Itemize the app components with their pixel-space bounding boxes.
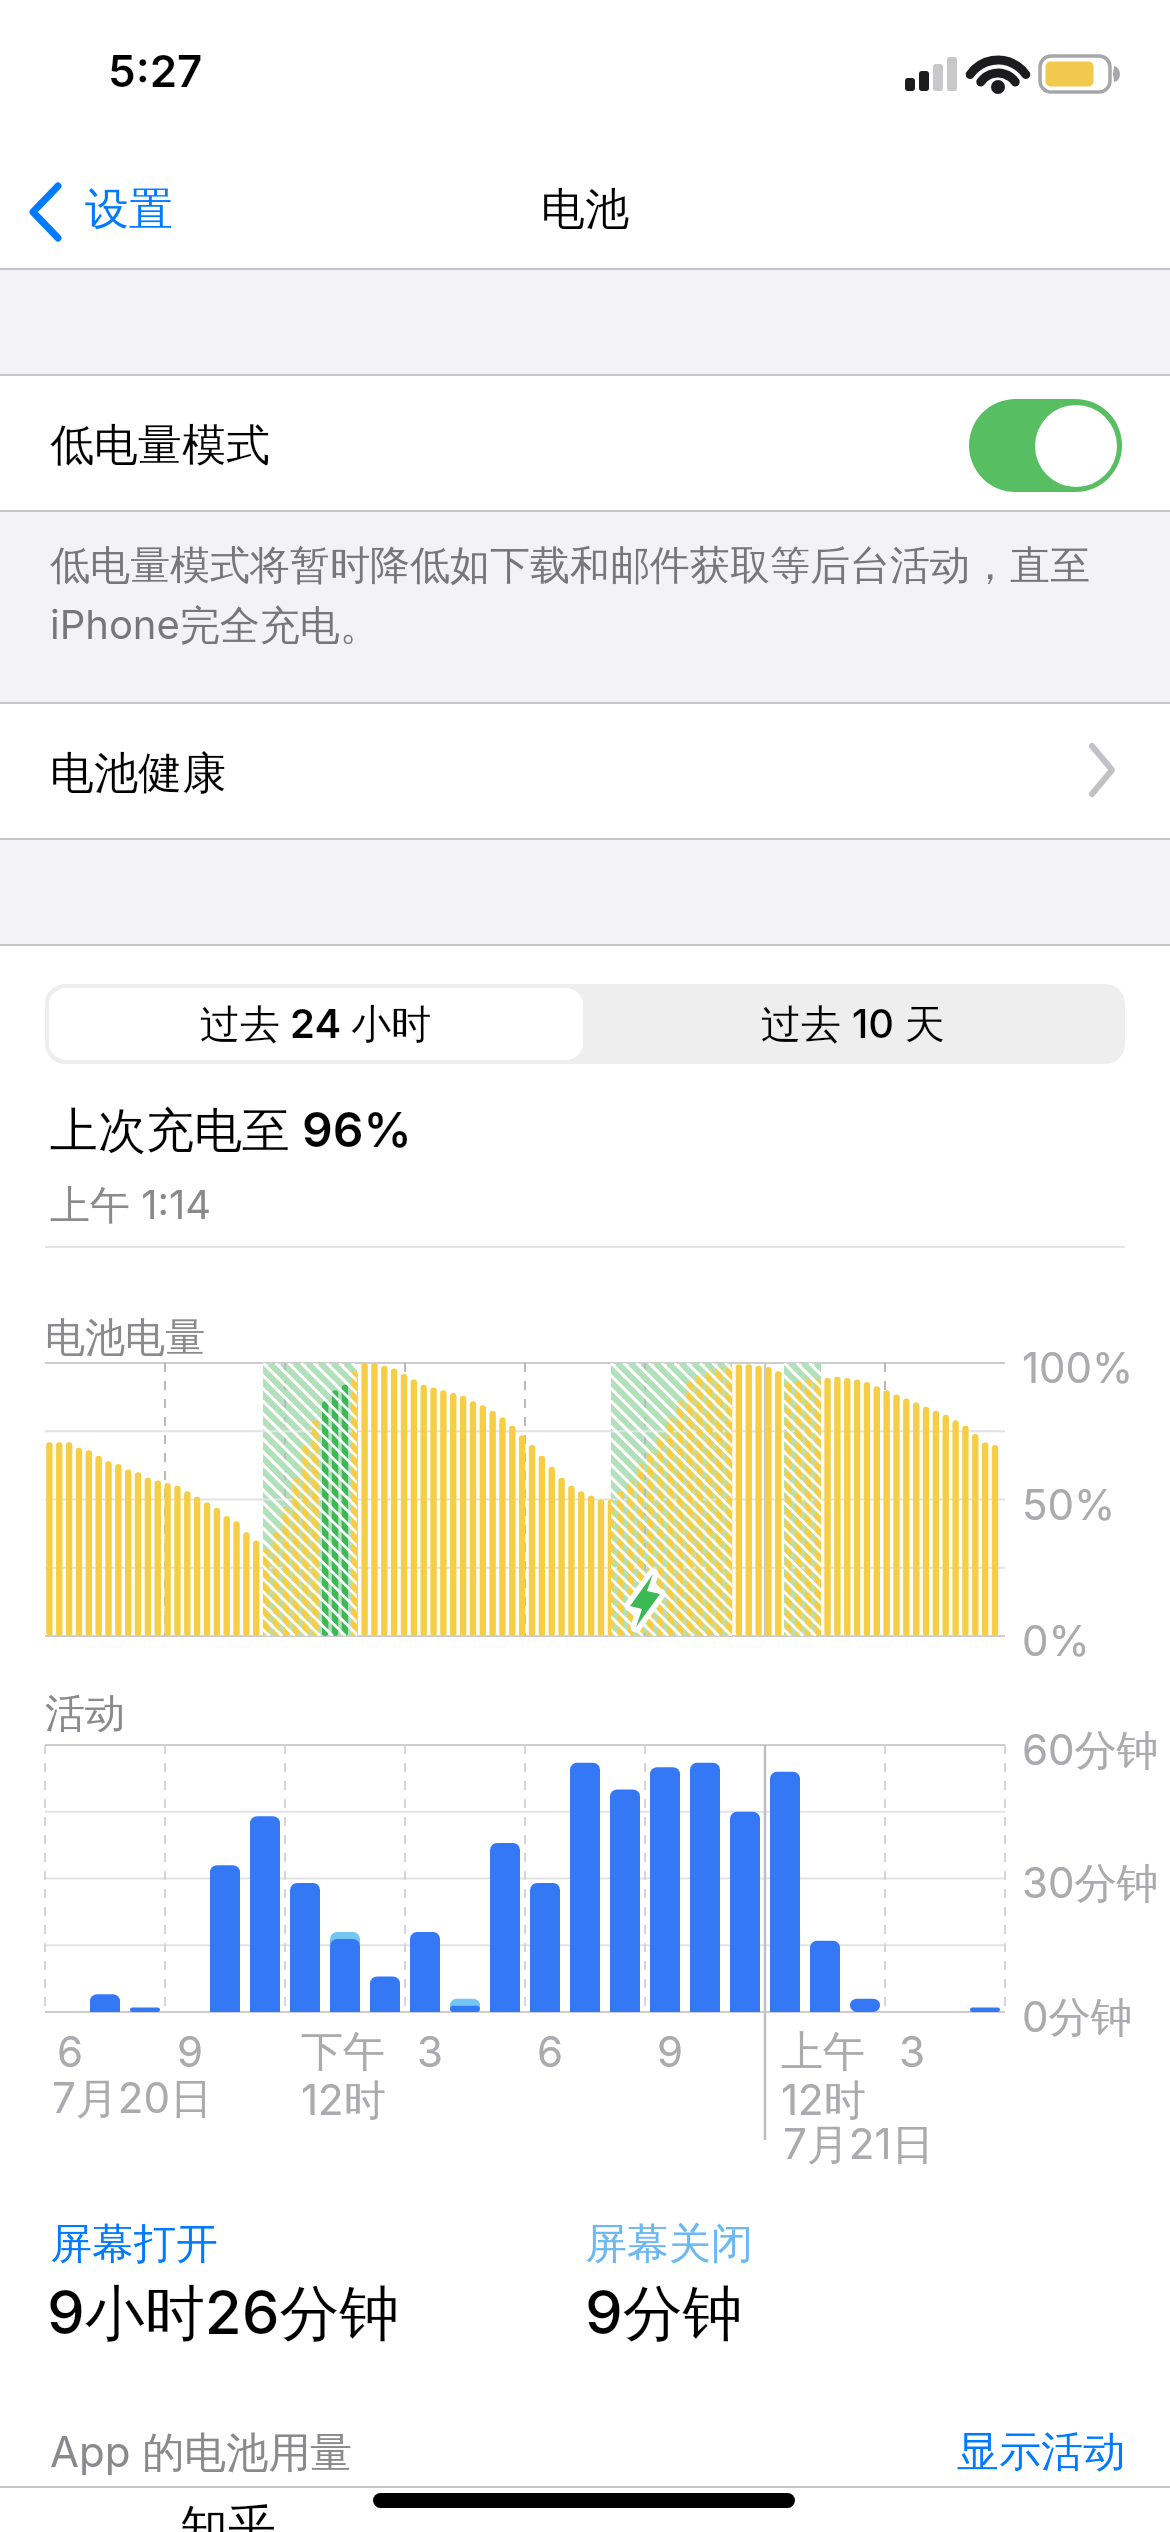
staticText: 下午	[301, 2026, 385, 2079]
button[interactable]: 低电量模式	[0, 376, 1170, 510]
staticText: 电池	[0, 182, 1170, 237]
staticText: 设置	[85, 182, 173, 237]
staticText: 0%	[1022, 1615, 1090, 1666]
button[interactable]: 过去 10 天	[585, 988, 1121, 1060]
staticText: 上午 1:14	[50, 1180, 212, 1231]
staticText: 过去 24 小时	[200, 999, 432, 1050]
staticText: 9	[177, 2026, 204, 2077]
staticText: 9	[657, 2026, 684, 2077]
staticText: 屏幕关闭	[585, 2218, 753, 2271]
staticText: 9小时26分钟	[47, 2276, 400, 2352]
button[interactable]: 设置	[20, 180, 200, 244]
staticText: 30分钟	[1022, 1857, 1159, 1910]
staticText: 知乎	[180, 2498, 276, 2532]
staticText: 0分钟	[1022, 1991, 1133, 2044]
staticText: 6	[537, 2026, 564, 2077]
button[interactable]	[969, 399, 1122, 492]
staticText: 60分钟	[1022, 1724, 1159, 1777]
staticText: 上午	[781, 2026, 865, 2079]
staticText: 活动	[45, 1688, 125, 1738]
staticText: 3	[417, 2026, 443, 2077]
button[interactable]: 过去 24 小时	[49, 988, 583, 1060]
staticText: 电池健康	[50, 746, 226, 801]
staticText: 6	[57, 2026, 84, 2077]
staticText: 低电量模式	[50, 418, 270, 473]
staticText: App 的电池用量	[50, 2426, 353, 2479]
staticText: 3	[899, 2026, 925, 2077]
button[interactable]: 显示活动	[905, 2420, 1125, 2476]
staticText: 低电量模式将暂时降低如下载和邮件获取等后台活动，直至 iPhone完全充电。	[50, 540, 1090, 651]
staticText: 5:27	[108, 44, 203, 97]
button[interactable]: 知乎	[0, 2488, 1170, 2532]
staticText: 7月21日	[783, 2118, 934, 2171]
staticText: 上次充电至 96%	[50, 1100, 412, 1161]
staticText: 屏幕打开	[50, 2218, 218, 2271]
staticText: 100%	[1022, 1342, 1134, 1393]
button[interactable]: 电池健康	[0, 704, 1170, 838]
staticText: 7月20日	[52, 2072, 212, 2125]
staticText: 过去 10 天	[761, 999, 945, 1050]
staticText: 12时	[301, 2074, 386, 2127]
staticText: 50%	[1022, 1479, 1116, 1530]
staticText: 9分钟	[585, 2276, 743, 2352]
staticText: 电池电量	[45, 1312, 205, 1362]
staticText: 显示活动	[945, 2426, 1125, 2479]
staticText: 12时	[781, 2074, 866, 2127]
